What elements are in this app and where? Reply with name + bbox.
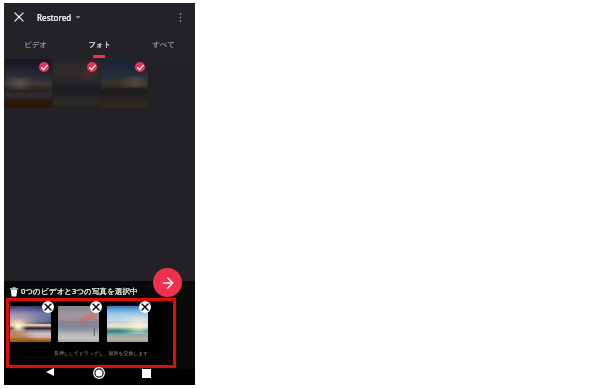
button[interactable]: ビデオ [4, 30, 67, 59]
button[interactable]: すべて [131, 30, 195, 59]
button[interactable]: More options [171, 8, 189, 26]
button[interactable]: Selected [39, 62, 49, 72]
button[interactable]: Selected [5, 59, 52, 108]
button[interactable]: フォト [67, 30, 131, 59]
staticText: 0つのビデオと3つの写真を選択中 [21, 286, 138, 296]
button[interactable]: Restored [37, 6, 81, 28]
button[interactable] [58, 306, 99, 342]
button[interactable]: Next [153, 268, 182, 297]
button[interactable]: Selected [87, 62, 97, 72]
button[interactable]: Selected [135, 62, 145, 72]
staticText: すべて [152, 40, 175, 49]
button[interactable] [10, 306, 51, 342]
staticText: Restored [37, 12, 72, 23]
button[interactable]: Selected [101, 59, 148, 108]
button[interactable]: Recent apps [137, 365, 155, 381]
button[interactable]: 0つのビデオと3つの写真を選択中 [4, 282, 195, 299]
button[interactable] [107, 306, 148, 342]
button[interactable]: Remove photo [90, 301, 102, 313]
button[interactable]: Remove photo [139, 301, 151, 313]
button[interactable]: Selected [53, 59, 100, 108]
button[interactable]: Home [90, 365, 108, 381]
staticText: 長押ししてドラッグし、順序を交換します [54, 350, 149, 356]
staticText: フォト [88, 40, 111, 49]
button[interactable]: Back [41, 364, 59, 380]
staticText: ビデオ [24, 40, 47, 49]
button[interactable]: Close [10, 8, 28, 26]
button[interactable]: Remove photo [42, 301, 54, 313]
